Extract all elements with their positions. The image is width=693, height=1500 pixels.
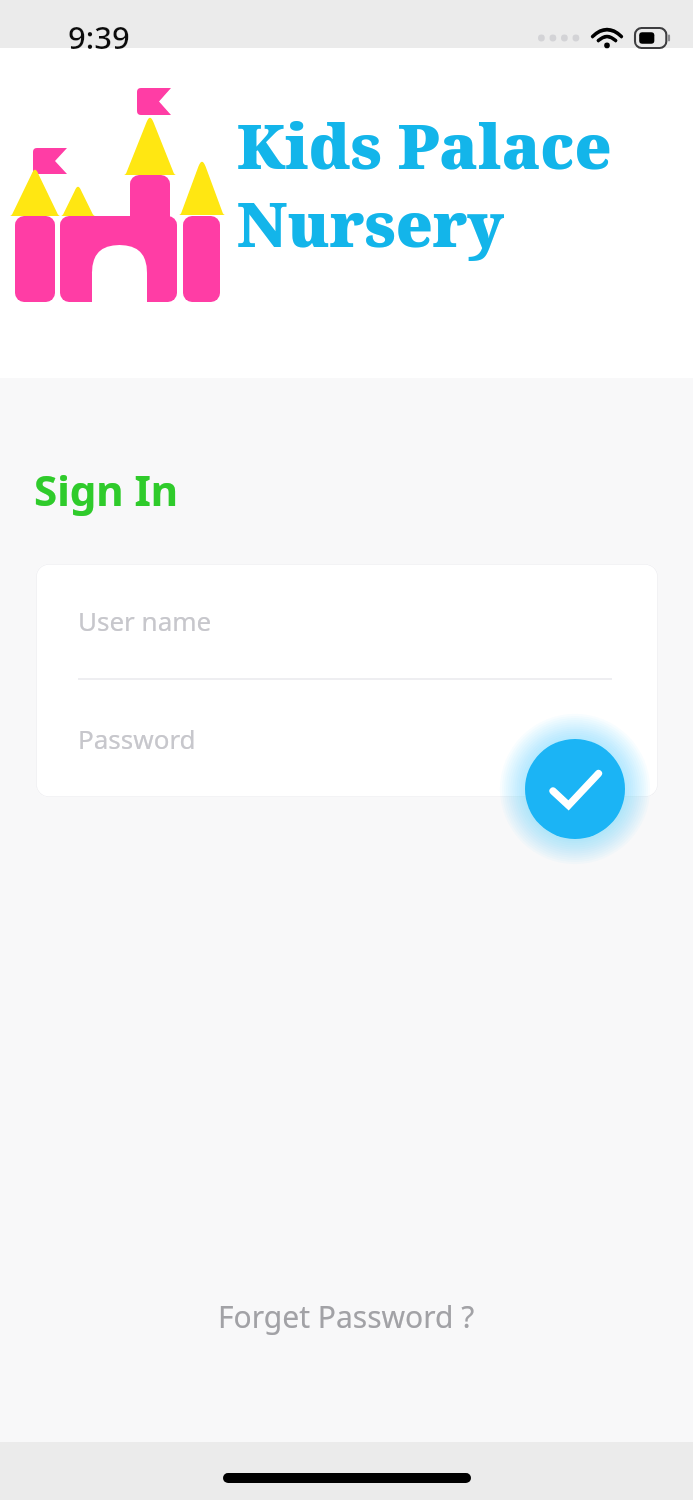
button[interactable]: Password — [36, 679, 658, 797]
staticText: User name — [78, 603, 212, 638]
staticText: 9:39 — [68, 16, 130, 58]
staticText: Forget Password ? — [218, 1296, 475, 1337]
staticText: Nursery — [237, 181, 505, 265]
staticText: Password — [78, 721, 196, 756]
button[interactable]: User name — [36, 564, 658, 679]
staticText: Sign In — [34, 461, 179, 518]
button[interactable]: Forget Password ? — [0, 1288, 693, 1344]
button[interactable]: Submit sign in — [525, 739, 625, 839]
staticText: Kids Palace — [237, 103, 612, 187]
